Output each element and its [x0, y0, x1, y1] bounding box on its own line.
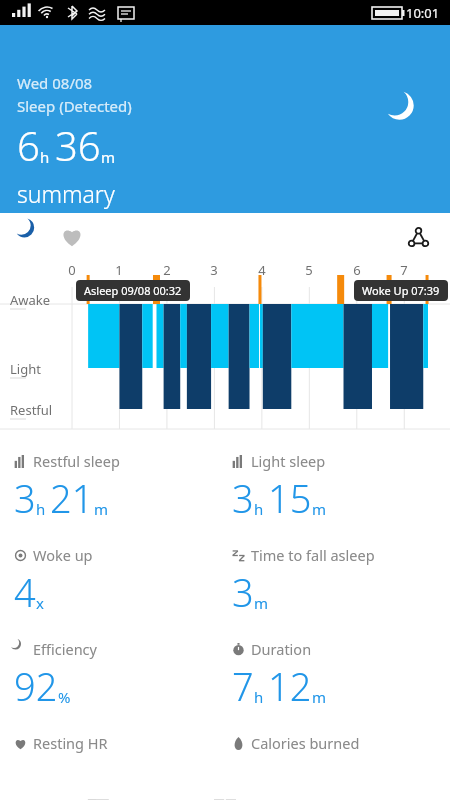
staticText: Asleep 09/08 00:32 [84, 283, 182, 298]
staticText: Efficiency [33, 639, 97, 659]
staticText: h [40, 147, 50, 167]
button[interactable]: Share [398, 217, 438, 257]
staticText: m [254, 593, 269, 613]
staticText: 36 [55, 118, 101, 172]
staticText: m [312, 687, 327, 707]
button[interactable]: Woke up [14, 545, 232, 639]
button[interactable]: Woke Up 07:39 [362, 283, 440, 298]
staticText: Light [10, 360, 41, 378]
staticText: 3 [205, 261, 223, 279]
staticText: h [254, 687, 264, 707]
staticText: Restful sleep [33, 451, 120, 471]
button[interactable]: Resting HR [14, 733, 232, 800]
staticText: 10:01 [406, 4, 440, 22]
staticText: Awake [10, 291, 51, 309]
staticText: 7 [395, 261, 413, 279]
staticText: m [101, 147, 116, 167]
staticText: Duration [251, 639, 312, 659]
staticText: Woke up [33, 545, 93, 565]
button[interactable]: Asleep 09/08 00:32 [84, 283, 182, 298]
staticText: m [312, 499, 327, 519]
staticText: 1 [110, 261, 128, 279]
button[interactable]: Sleep tab [12, 217, 52, 257]
staticText: 2 [158, 261, 176, 279]
staticText: Light sleep [251, 451, 326, 471]
button[interactable]: Restful sleep [14, 451, 232, 545]
button[interactable]: Light sleep [232, 451, 450, 545]
staticText: 0 [63, 261, 81, 279]
button[interactable]: Efficiency [14, 639, 232, 733]
staticText: 4 [253, 261, 271, 279]
button[interactable]: Time to fall asleep [232, 545, 450, 639]
staticText: 7 [232, 660, 254, 712]
staticText: summary [17, 178, 115, 209]
staticText: 15 [268, 472, 312, 524]
staticText: 3 [232, 566, 254, 618]
staticText: Calories burned [251, 733, 360, 753]
staticText: Time to fall asleep [251, 545, 375, 565]
staticText: 3 [232, 472, 254, 524]
staticText: Wed 08/08 [17, 73, 93, 93]
staticText: h [254, 499, 264, 519]
staticText: Resting HR [33, 733, 108, 753]
staticText: 21 [50, 472, 94, 524]
button[interactable]: Heart rate tab [52, 217, 92, 257]
staticText: h [36, 499, 46, 519]
staticText: x [36, 593, 44, 613]
button[interactable]: Calories burned [232, 733, 450, 800]
button[interactable]: Duration [232, 639, 450, 733]
staticText: Sleep (Detected) [17, 96, 132, 116]
staticText: Woke Up 07:39 [362, 283, 440, 298]
staticText: 6 [17, 118, 40, 172]
staticText: m [94, 499, 109, 519]
staticText: % [58, 687, 71, 707]
staticText: 3 [14, 472, 36, 524]
staticText: 6 [348, 261, 366, 279]
staticText: 92 [14, 660, 58, 712]
staticText: Restful [10, 401, 53, 419]
staticText: 5 [300, 261, 318, 279]
staticText: 4 [14, 566, 36, 618]
staticText: 12 [268, 660, 312, 712]
